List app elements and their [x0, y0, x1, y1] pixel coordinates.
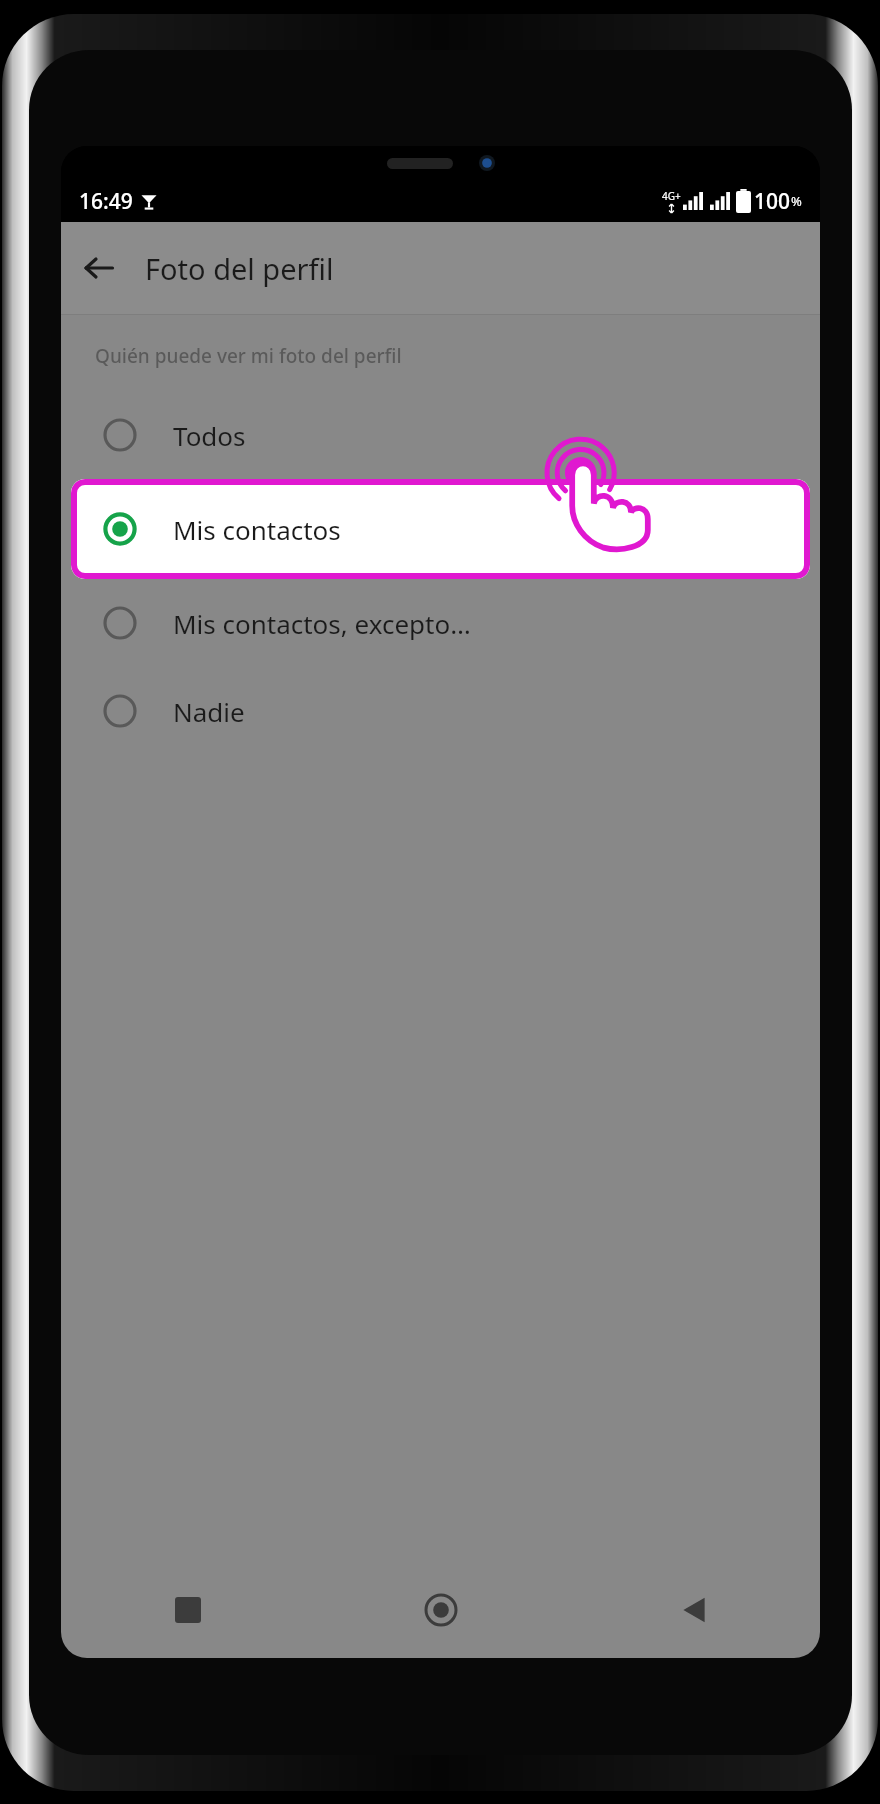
staticText: 16:49: [79, 187, 133, 216]
staticText: %: [791, 192, 802, 210]
staticText: Mis contactos: [173, 512, 341, 547]
button[interactable]: Mis contactos: [71, 479, 810, 579]
button[interactable]: Back: [567, 1562, 820, 1658]
staticText: 4G+: [662, 189, 681, 203]
staticText: Todos: [173, 418, 246, 453]
staticText: Quién puede ver mi foto del perfil: [95, 343, 402, 369]
button[interactable]: Nadie: [61, 667, 820, 755]
button[interactable]: Todos: [61, 391, 820, 479]
staticText: 100: [754, 187, 791, 216]
staticText: Nadie: [173, 694, 245, 729]
button[interactable]: Mis contactos, excepto…: [61, 579, 820, 667]
button[interactable]: Home: [314, 1562, 567, 1658]
button[interactable]: Back: [71, 240, 127, 296]
staticText: Mis contactos, excepto…: [173, 606, 471, 641]
staticText: Foto del perfil: [145, 249, 334, 288]
button[interactable]: Recent apps: [61, 1562, 314, 1658]
